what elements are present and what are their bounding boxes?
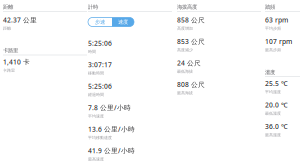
staticText: 3:07:17 [88, 60, 112, 69]
staticText: 平均速度 [88, 114, 104, 118]
staticText: 20.0 ℃ [265, 100, 288, 109]
staticText: 107 rpm [265, 37, 292, 46]
staticText: 5:25:06 [88, 39, 112, 48]
staticText: 最低溫度 [265, 111, 281, 116]
staticText: 海拔高度 [177, 4, 197, 10]
staticText: 步速 [95, 19, 105, 25]
staticText: 移動時間 [88, 71, 104, 75]
staticText: 13.6 公里/小時 [88, 125, 135, 134]
staticText: 最高溫度 [265, 132, 281, 137]
staticText: 41.9 公里/小時 [88, 146, 135, 155]
button[interactable]: 速度 [112, 17, 134, 26]
staticText: 最高速度 [88, 157, 104, 161]
staticText: 5:25:06 [88, 82, 112, 91]
staticText: 高度增加 [177, 26, 193, 31]
staticText: 卡路里 [3, 68, 15, 73]
staticText: 平均移動速度 [88, 135, 112, 140]
staticText: 1,410 卡 [3, 57, 30, 66]
staticText: 計時 [88, 4, 98, 10]
staticText: 距離 [3, 4, 13, 10]
staticText: 858 公尺 [177, 16, 205, 24]
staticText: 7.8 公里/小時 [88, 103, 131, 112]
staticText: 溫度 [265, 69, 275, 75]
staticText: 36.0 ℃ [265, 122, 288, 131]
staticText: 最低海拔 [177, 69, 193, 74]
staticText: 24 公尺 [177, 59, 201, 67]
staticText: 踏頻 [265, 4, 275, 10]
staticText: 853 公尺 [177, 37, 205, 46]
button[interactable]: 步速 [88, 17, 112, 26]
staticText: 63 rpm [265, 16, 288, 24]
staticText: 卡路里 [3, 47, 18, 54]
staticText: 42.37 公里 [3, 16, 37, 24]
staticText: 平均溫度 [265, 89, 281, 94]
staticText: 最高海拔 [177, 90, 193, 95]
staticText: 最高步頻 [265, 47, 281, 52]
staticText: 高度減少 [177, 47, 193, 52]
staticText: 距離 [3, 26, 11, 31]
staticText: 808 公尺 [177, 80, 205, 89]
staticText: 平均步頻 [265, 26, 281, 31]
staticText: 經過時間 [88, 92, 104, 97]
staticText: 速度 [118, 19, 128, 25]
staticText: 25.5 ℃ [265, 79, 288, 88]
staticText: 時間 [88, 49, 96, 54]
